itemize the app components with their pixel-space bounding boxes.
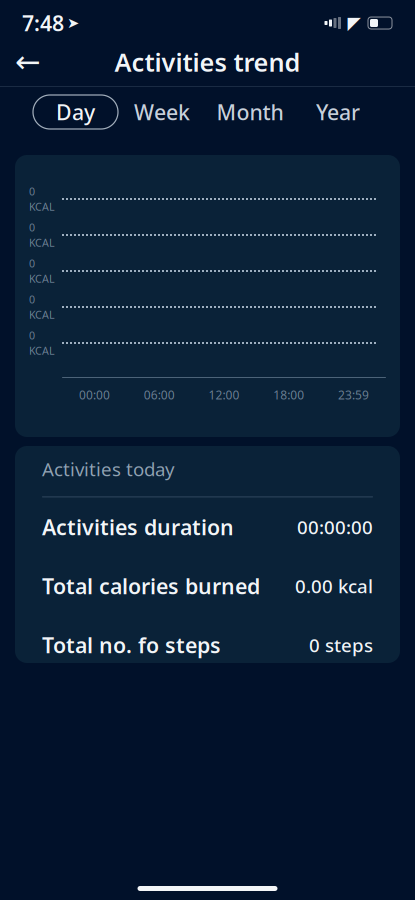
staticText: ◤ — [347, 13, 360, 33]
staticText: 0 — [29, 292, 35, 306]
staticText: KCAL — [29, 307, 55, 322]
staticText: 7:48 — [22, 9, 64, 37]
staticText: Activities trend — [114, 45, 300, 79]
button[interactable]: Week — [118, 95, 206, 129]
staticText: 0 steps — [309, 632, 373, 657]
staticText: ➤ — [67, 15, 79, 31]
staticText: 0 — [29, 256, 35, 270]
staticText: Day — [56, 98, 95, 126]
staticText: KCAL — [29, 343, 55, 358]
staticText: Week — [134, 98, 190, 126]
button[interactable]: Back — [6, 40, 50, 84]
button[interactable]: Month — [206, 95, 294, 129]
staticText: Total calories burned — [42, 572, 260, 600]
staticText: 12:00 — [208, 387, 239, 403]
button[interactable]: Day — [33, 95, 118, 129]
staticText: Year — [316, 98, 360, 126]
staticText: ← — [15, 45, 41, 79]
staticText: KCAL — [29, 235, 55, 250]
staticText: 0 — [29, 184, 35, 198]
staticText: KCAL — [29, 199, 55, 214]
staticText: 0 — [29, 328, 35, 342]
staticText: 00:00 — [79, 387, 110, 403]
staticText: 18:00 — [273, 387, 304, 403]
staticText: 0.00 kcal — [295, 573, 373, 598]
staticText: 00:00:00 — [297, 514, 373, 539]
staticText: 06:00 — [144, 387, 175, 403]
staticText: KCAL — [29, 271, 55, 286]
staticText: 0 — [29, 220, 35, 234]
staticText: Activities today — [42, 457, 175, 481]
button[interactable]: Year — [294, 95, 382, 129]
staticText: 23:59 — [338, 387, 369, 403]
staticText: Activities duration — [42, 513, 234, 541]
staticText: Total no. fo steps — [42, 631, 221, 659]
staticText: Month — [216, 98, 283, 126]
